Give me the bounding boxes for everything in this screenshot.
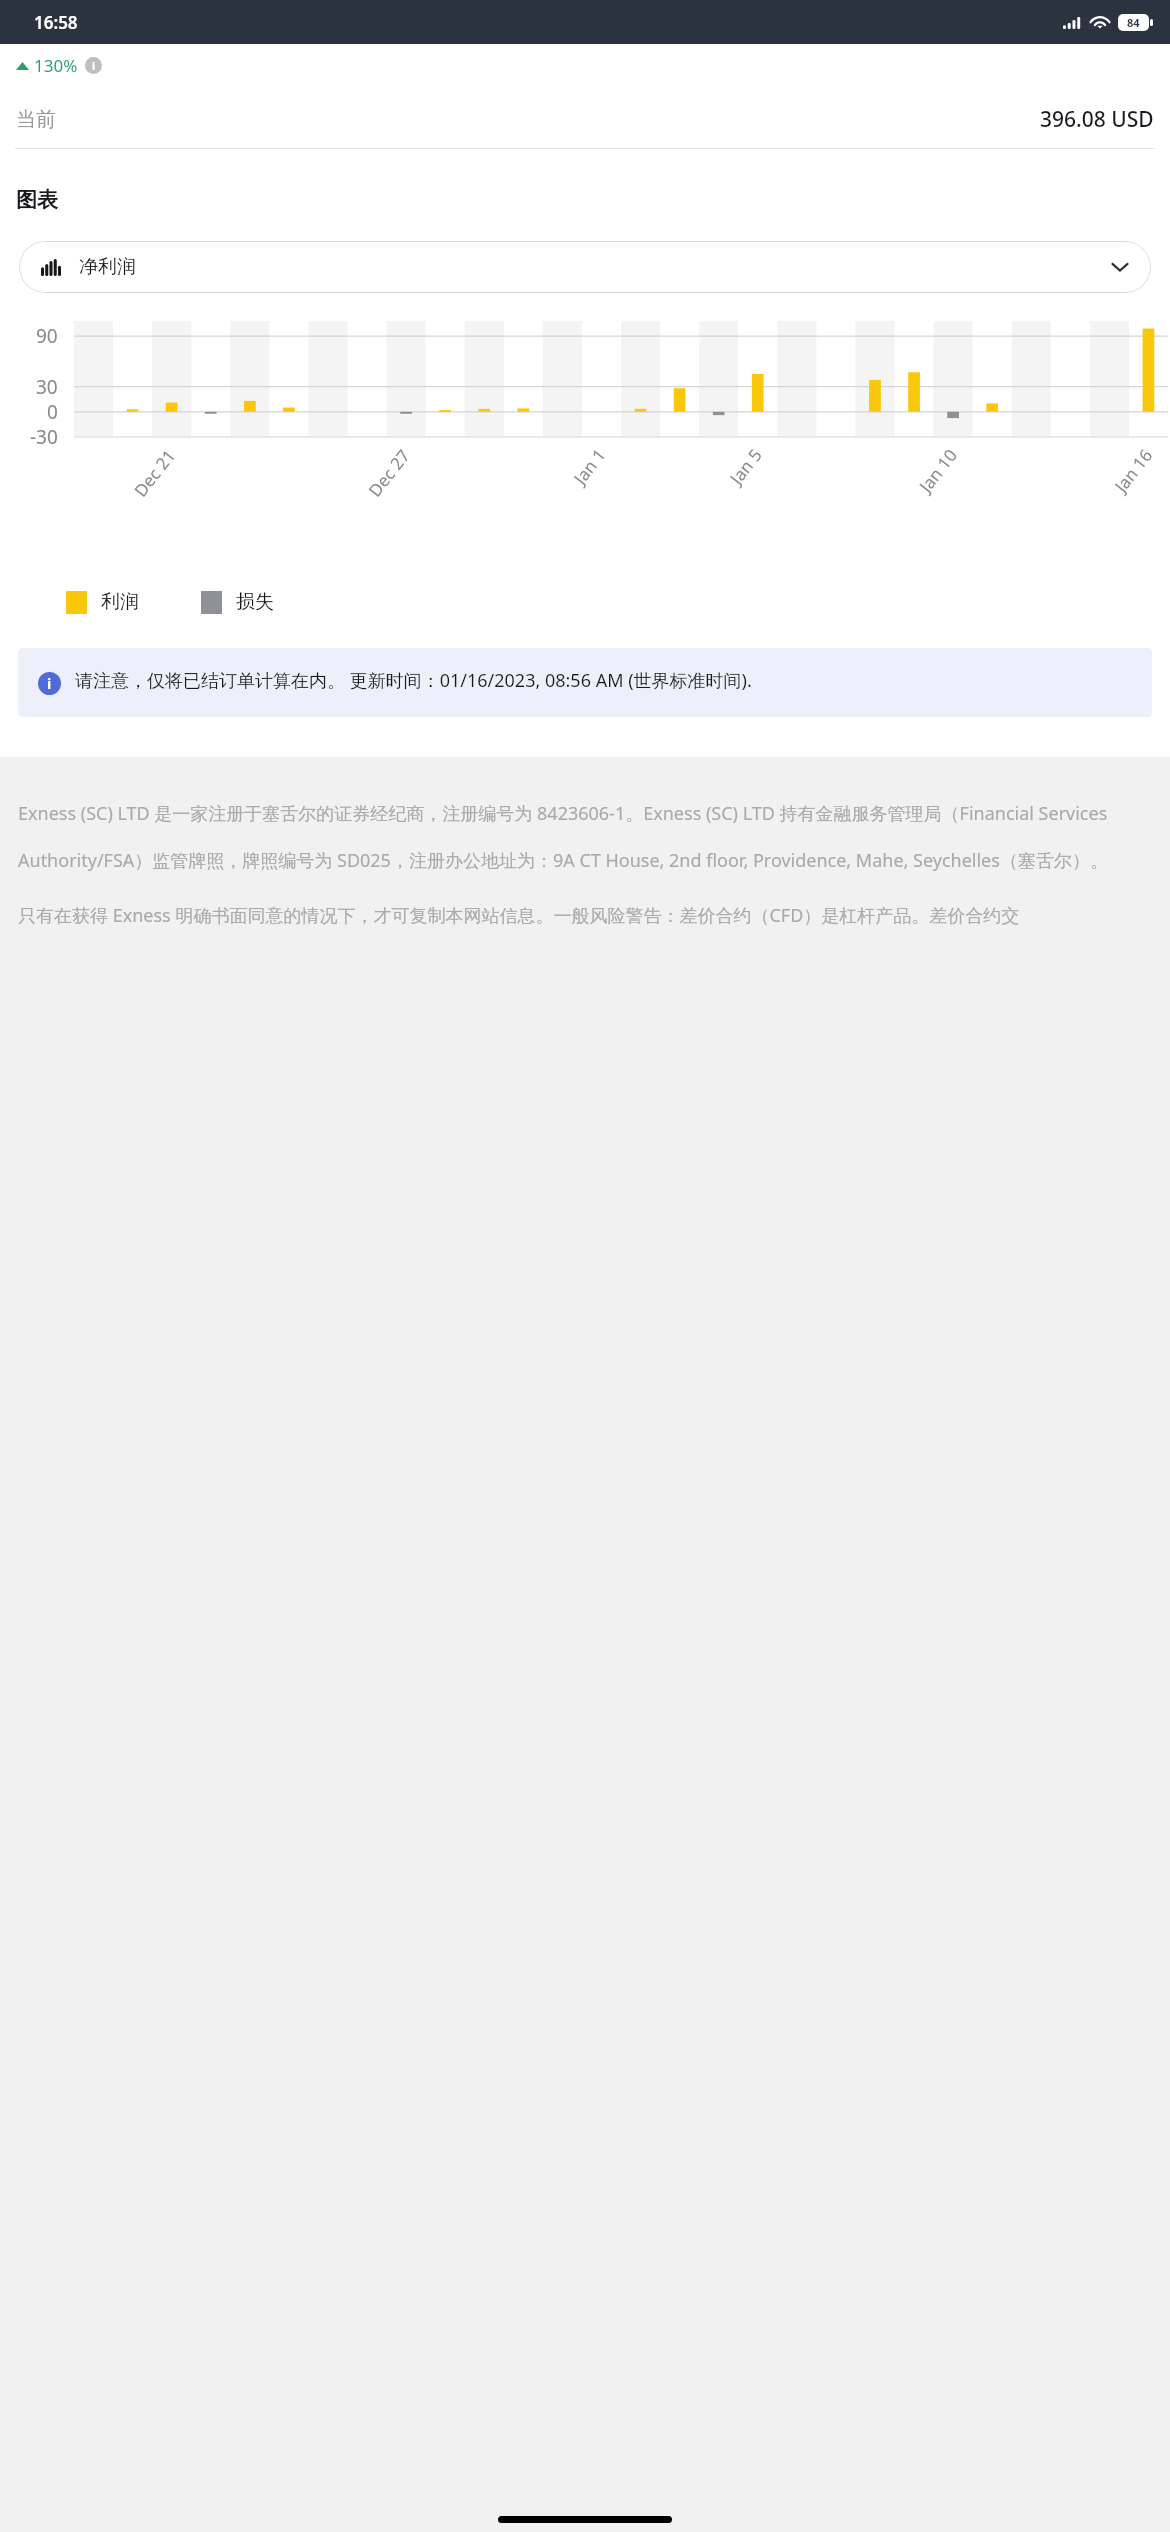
staticText: i — [47, 674, 52, 693]
button[interactable]: 净利润 — [19, 241, 1151, 293]
staticText: 只有在获得 Exness 明确书面同意的情况下，才可复制本网站信息。一般风险警告… — [18, 903, 1020, 928]
staticText: i — [92, 58, 96, 73]
staticText: 净利润 — [79, 255, 136, 279]
staticText: 当前 — [16, 107, 56, 132]
button[interactable]: 利润 — [66, 590, 139, 614]
staticText: 请注意，仅将已结订单计算在内。 更新时间：01/16/2023, 08:56 A… — [75, 668, 752, 693]
staticText: 利润 — [101, 590, 139, 614]
staticText: 84 — [1127, 15, 1140, 30]
staticText: 396.08 USD — [1040, 105, 1154, 134]
staticText: Exness (SC) LTD 是一家注册于塞舌尔的证券经纪商，注册编号为 84… — [18, 801, 1152, 873]
staticText: 130% — [34, 54, 78, 77]
button[interactable]: Info — [85, 57, 102, 74]
staticText: 16:58 — [34, 11, 78, 34]
button[interactable]: 损失 — [201, 590, 274, 614]
staticText: 损失 — [236, 590, 274, 614]
staticText: 图表 — [16, 187, 58, 213]
